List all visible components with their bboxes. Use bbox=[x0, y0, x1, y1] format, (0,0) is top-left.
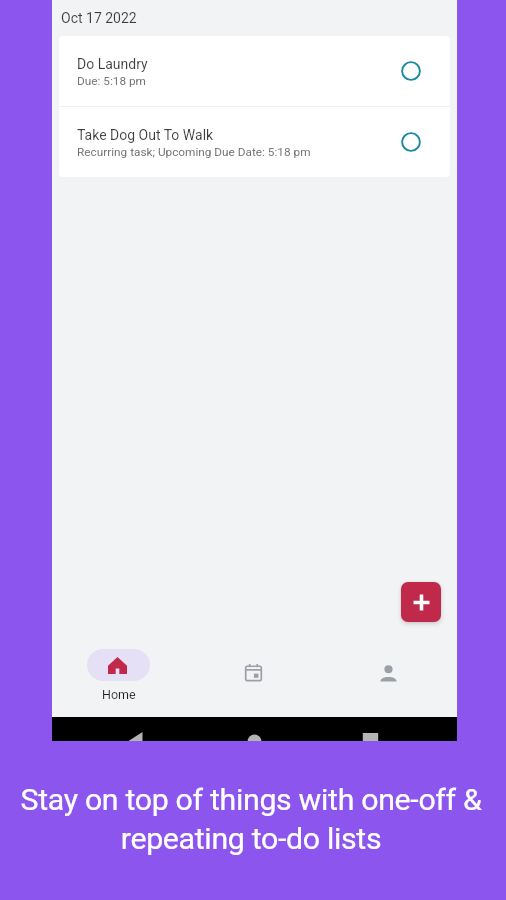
staticText: Take Dog Out To Walk bbox=[77, 127, 214, 143]
staticText: Due: 5:18 pm bbox=[77, 74, 146, 88]
button[interactable]: Profile bbox=[321, 647, 456, 703]
button[interactable]: Do Laundry bbox=[59, 36, 450, 106]
staticText: Stay on top of things with one-off & rep… bbox=[0, 782, 504, 857]
staticText: Do Laundry bbox=[77, 56, 148, 72]
button[interactable]: Add task bbox=[401, 582, 441, 622]
staticText: Recurring task; Upcoming Due Date: 5:18 … bbox=[77, 145, 311, 159]
button[interactable]: Mark task complete bbox=[396, 127, 426, 157]
button[interactable]: Home bbox=[51, 647, 186, 703]
staticText: Oct 17 2022 bbox=[61, 10, 137, 26]
button[interactable]: Mark task complete bbox=[396, 56, 426, 86]
staticText: Home bbox=[102, 687, 136, 702]
button[interactable]: Take Dog Out To Walk bbox=[59, 107, 450, 177]
button[interactable]: Calendar bbox=[186, 647, 321, 703]
